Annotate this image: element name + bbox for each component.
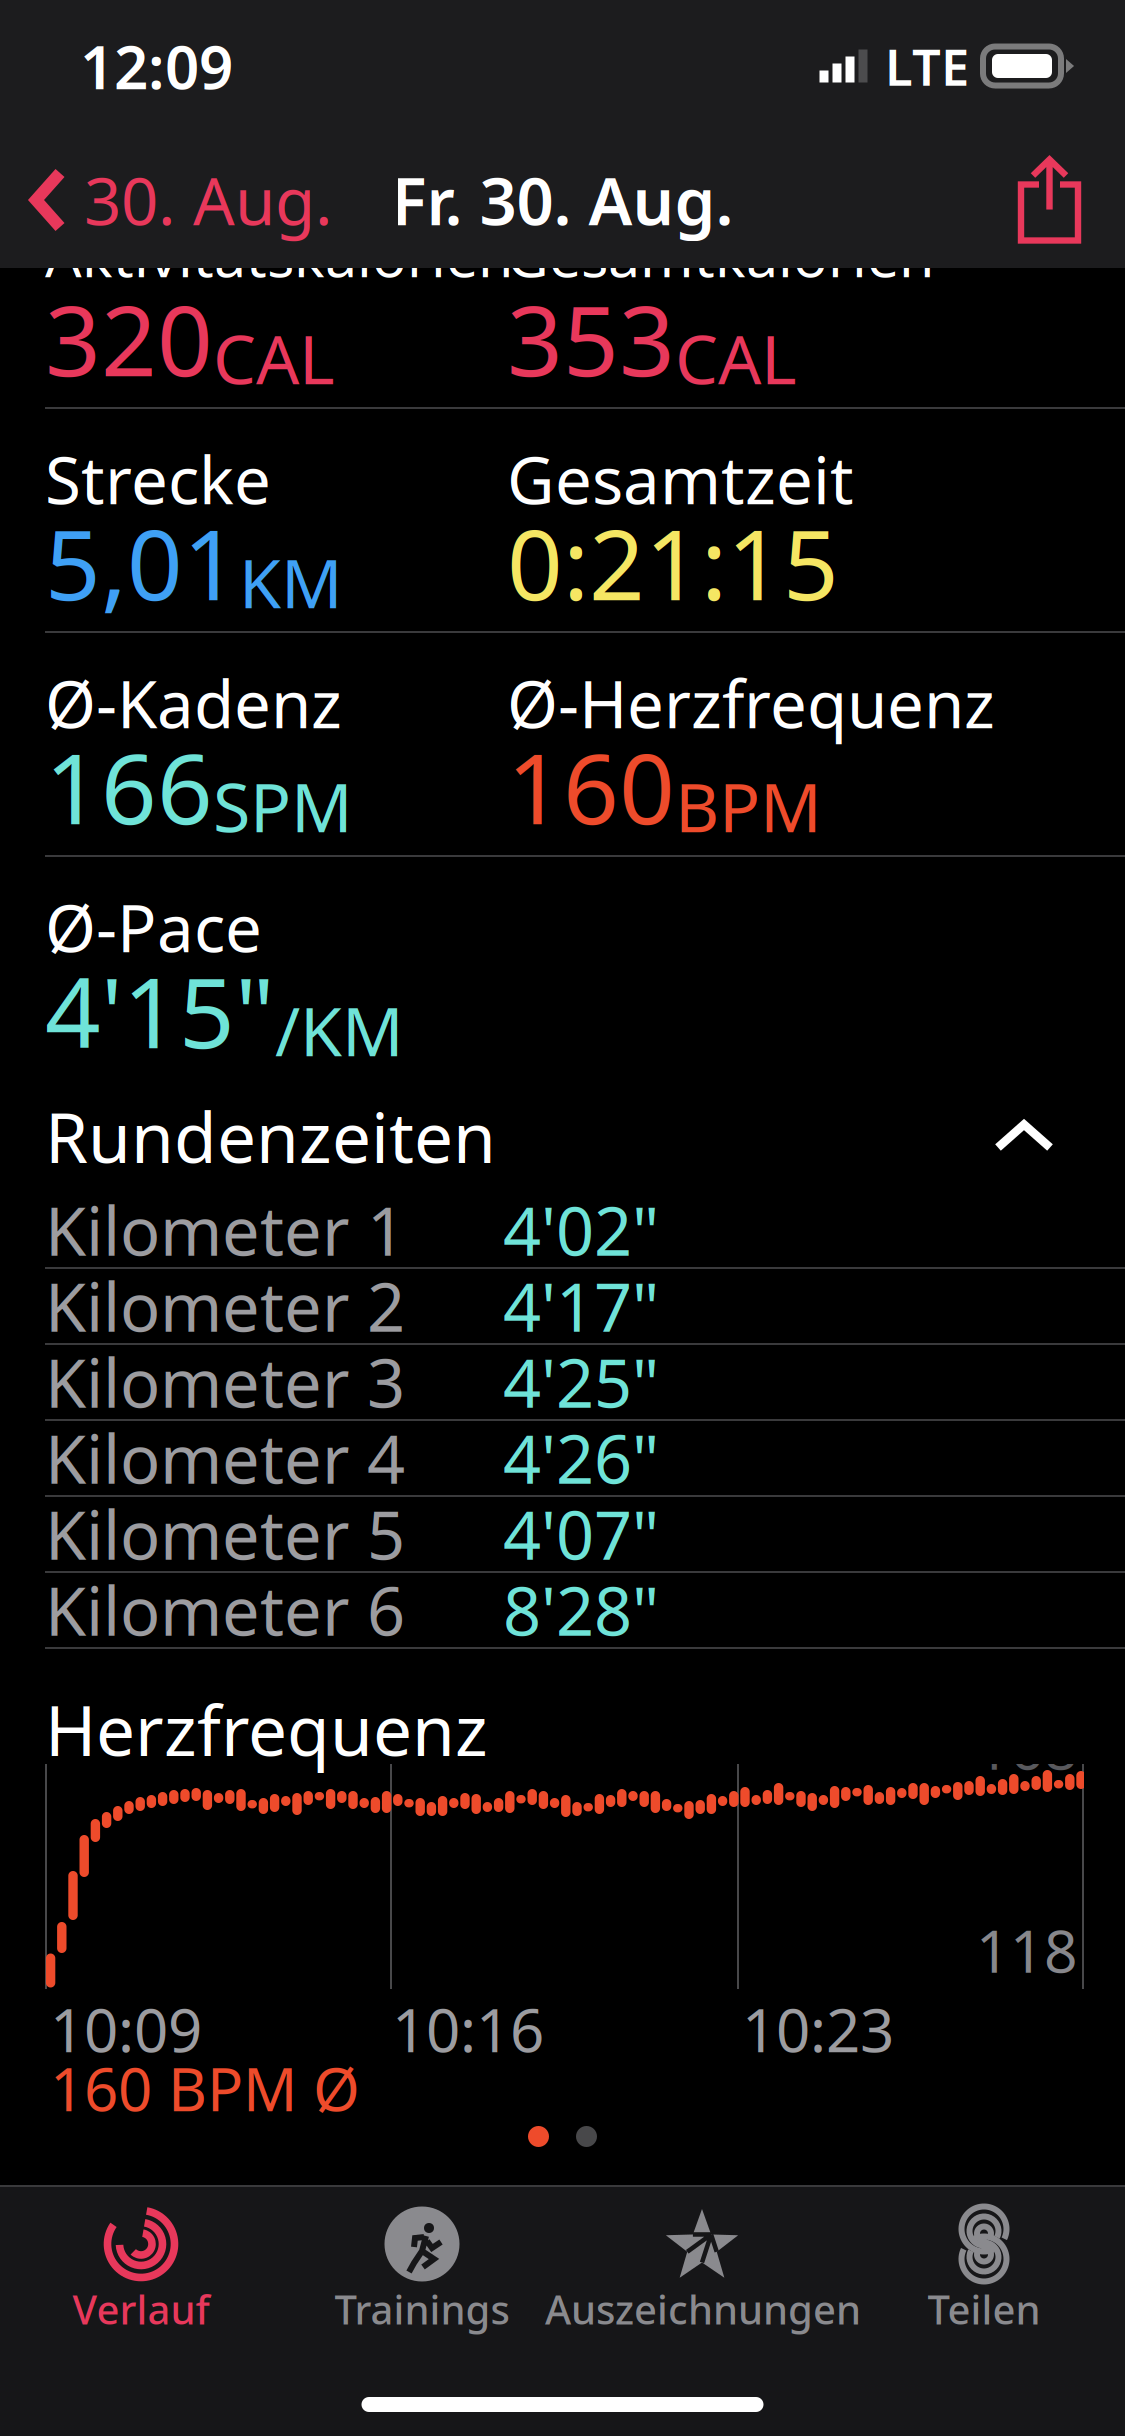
staticText: 4'15" [45, 946, 275, 1075]
staticText: Kilometer 4 [45, 1414, 405, 1502]
staticText: 8'28" [503, 1566, 659, 1654]
staticText: 10:09 [50, 1989, 202, 2069]
staticText: 168 [976, 1708, 1078, 1786]
staticText: 160 BPM Ø [50, 2048, 360, 2128]
staticText: 353 [507, 274, 675, 403]
staticText: LTE [885, 32, 969, 100]
staticText: Herzfrequenz [45, 1683, 488, 1775]
staticText: 118 [976, 1911, 1078, 1989]
staticText: 10:16 [392, 1989, 544, 2069]
staticText: 160 [507, 722, 675, 851]
staticText: Gesamtzeit [507, 436, 854, 522]
staticText: 4'02" [503, 1186, 659, 1274]
button[interactable]: 30. Aug. [0, 132, 357, 268]
staticText: CAL [675, 313, 797, 403]
staticText: Gesamtkalorien [507, 217, 934, 293]
staticText: Trainings [334, 2282, 509, 2335]
staticText: CAL [213, 313, 335, 403]
staticText: Kilometer 1 [45, 1186, 405, 1274]
staticText: /KM [275, 985, 404, 1075]
staticText: Teilen [927, 2282, 1040, 2335]
staticText: Kilometer 5 [45, 1490, 405, 1578]
staticText: KM [239, 537, 343, 627]
staticText: 12:09 [80, 26, 233, 106]
staticText: Rundenzeiten [45, 1090, 496, 1182]
staticText: Kilometer 6 [45, 1566, 405, 1654]
button[interactable]: Teilen [993, 132, 1125, 268]
staticText: 4'26" [503, 1414, 659, 1502]
staticText: BPM [675, 761, 822, 851]
staticText: Aktivitätskalorien [45, 217, 513, 293]
staticText: Strecke [45, 436, 271, 522]
button[interactable]: Verlauf [0, 2192, 281, 2342]
button[interactable]: Teilen [843, 2192, 1124, 2342]
staticText: Fr. 30. Aug. [391, 157, 733, 243]
staticText: 166 [45, 722, 213, 851]
staticText: 4'25" [503, 1338, 659, 1426]
staticText: SPM [213, 761, 353, 851]
staticText: 0:21:15 [507, 498, 839, 627]
button[interactable]: Auszeichnungen [562, 2192, 843, 2342]
staticText: Kilometer 2 [45, 1262, 405, 1350]
staticText: Verlauf [72, 2282, 209, 2335]
staticText: Kilometer 3 [45, 1338, 405, 1426]
staticText: 4'07" [503, 1490, 659, 1578]
staticText: 5,01 [45, 498, 239, 627]
staticText: Ø-Kadenz [45, 660, 342, 746]
button[interactable]: Rundenzeiten [0, 1079, 1125, 1193]
staticText: Ø-Pace [45, 884, 262, 970]
staticText: 30. Aug. [84, 157, 333, 243]
staticText: 320 [45, 274, 213, 403]
staticText: 4'17" [503, 1262, 659, 1350]
staticText: Auszeichnungen [545, 2282, 861, 2335]
button[interactable]: Trainings [281, 2192, 562, 2342]
staticText: 10:23 [742, 1989, 894, 2069]
staticText: Ø-Herzfrequenz [507, 660, 995, 746]
